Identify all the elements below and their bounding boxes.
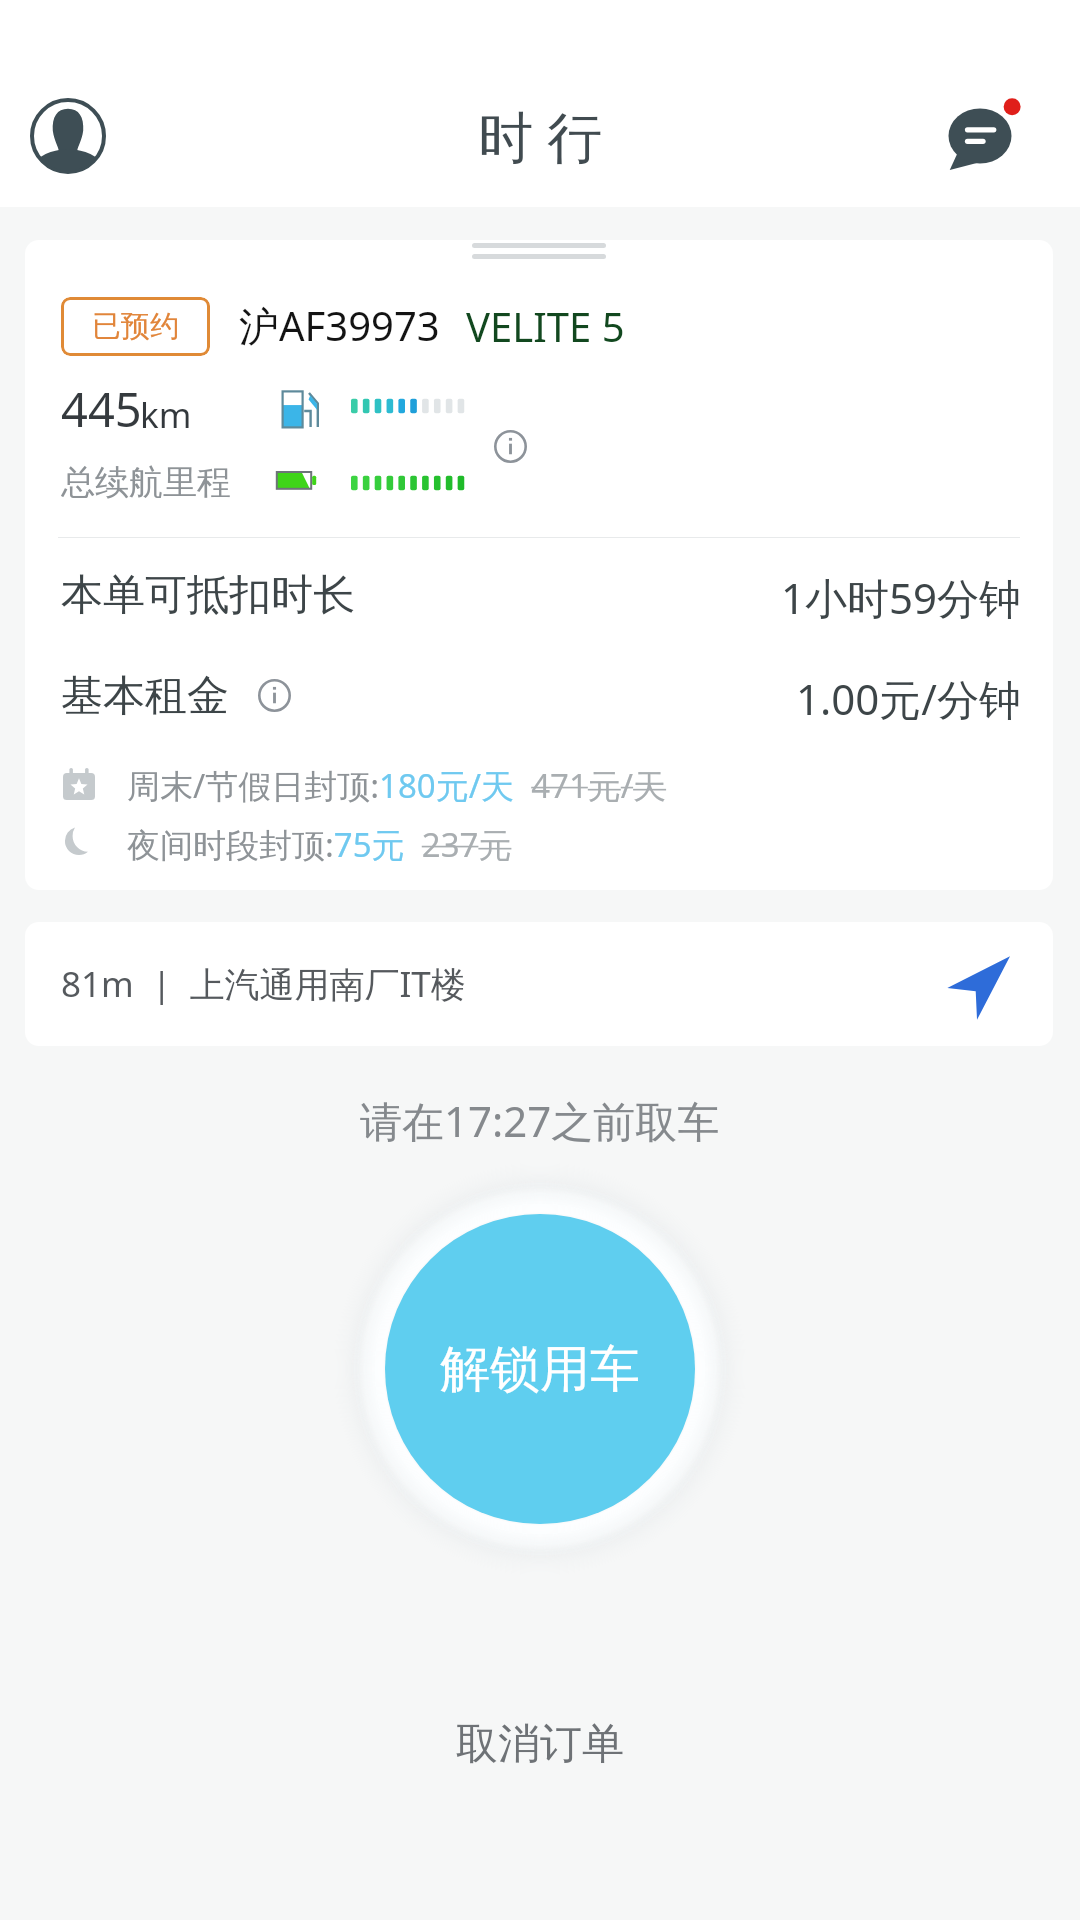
staticText: 已预约 — [92, 308, 179, 345]
staticText: VELITE 5 — [466, 299, 625, 353]
button[interactable]: Navigate — [939, 948, 1019, 1028]
button[interactable]: Messages — [932, 88, 1028, 184]
button[interactable]: 已预约 — [25, 240, 1053, 890]
staticText: km — [140, 391, 192, 439]
button[interactable]: Rent info — [252, 673, 296, 717]
button[interactable]: Profile — [24, 92, 112, 180]
staticText: 取消订单 — [456, 1718, 624, 1771]
staticText: 1小时59分钟 — [781, 569, 1022, 626]
staticText: 沪AF39973 — [239, 298, 440, 353]
staticText: 总续航里程 — [61, 461, 231, 504]
staticText: 夜间时段封顶:75元 237元 — [127, 822, 512, 867]
button[interactable]: 81m | 上汽通用南厂IT楼 — [25, 922, 1053, 1046]
staticText: 81m | 上汽通用南厂IT楼 — [61, 960, 466, 1008]
button[interactable]: Range info — [488, 424, 532, 468]
staticText: 请在17:27之前取车 — [360, 1092, 720, 1149]
staticText: 445 — [61, 377, 142, 441]
button[interactable]: 已预约 — [61, 297, 210, 356]
button[interactable]: 解锁用车 — [385, 1214, 695, 1524]
staticText: 本单可抵扣时长 — [61, 569, 355, 622]
staticText: 时 行 — [478, 98, 603, 173]
staticText: 解锁用车 — [440, 1338, 640, 1401]
staticText: 基本租金 — [61, 670, 229, 723]
staticText: 周末/节假日封顶:180元/天 471元/天 — [127, 763, 667, 808]
staticText: 1.00元/分钟 — [796, 670, 1021, 727]
button[interactable]: 取消订单 — [396, 1704, 684, 1785]
